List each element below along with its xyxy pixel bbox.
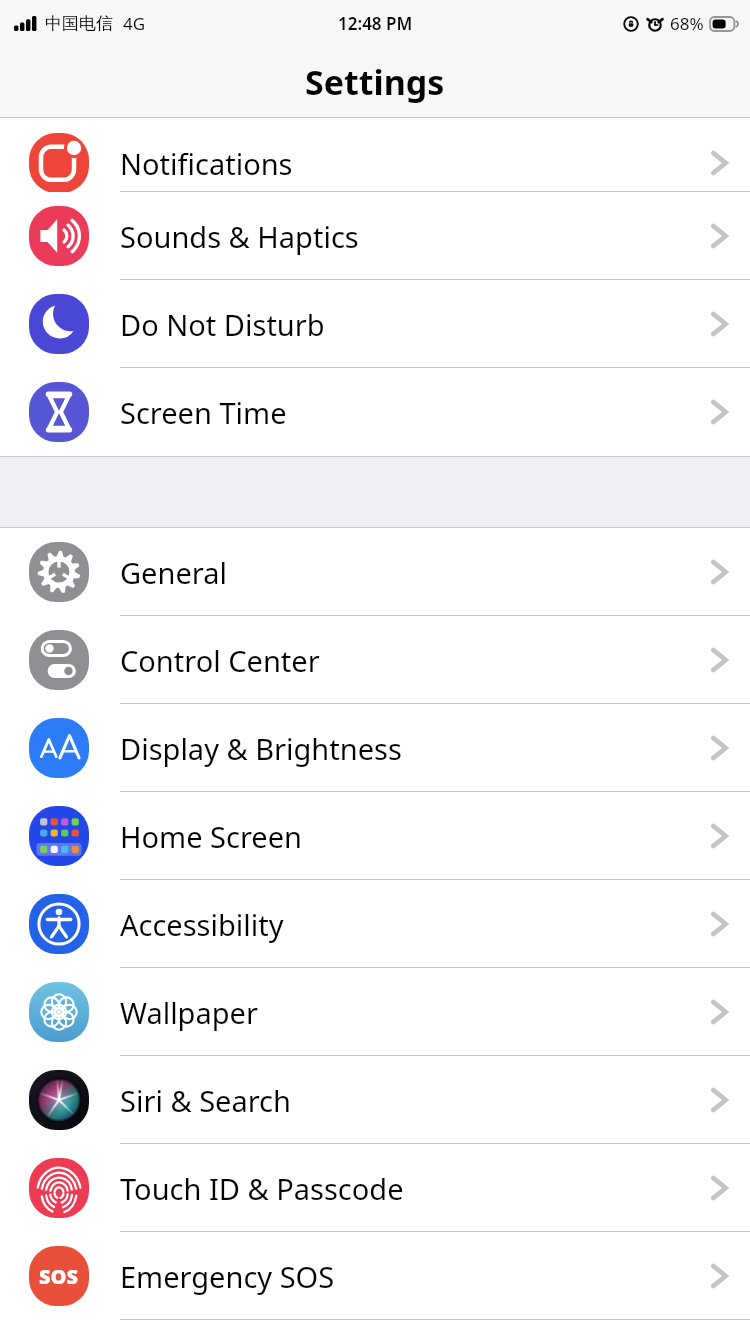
staticText: Emergency SOS (120, 1257, 335, 1296)
staticText: Home Screen (120, 817, 302, 856)
staticText: Control Center (120, 641, 320, 680)
staticText: Sounds & Haptics (120, 217, 359, 256)
button[interactable]: Wallpaper (0, 968, 750, 1056)
button[interactable]: Touch ID & Passcode (0, 1144, 750, 1232)
button[interactable]: SOS (0, 1232, 750, 1320)
button[interactable]: Sounds & Haptics (0, 192, 750, 280)
staticText: Touch ID & Passcode (120, 1169, 404, 1208)
button[interactable]: Do Not Disturb (0, 280, 750, 368)
staticText: Settings (305, 59, 445, 105)
staticText: General (120, 553, 227, 592)
button[interactable]: Notifications (0, 118, 750, 192)
button[interactable]: General (0, 528, 750, 616)
button[interactable]: Siri & Search (0, 1056, 750, 1144)
staticText: Display & Brightness (120, 729, 402, 768)
button[interactable]: Accessibility (0, 880, 750, 968)
staticText: 4G (123, 12, 146, 35)
staticText: Accessibility (120, 905, 284, 944)
staticText: Screen Time (120, 393, 287, 432)
button[interactable]: Control Center (0, 616, 750, 704)
button[interactable]: Screen Time (0, 368, 750, 456)
button[interactable]: Home Screen (0, 792, 750, 880)
staticText: 中国电信 (45, 13, 113, 34)
staticText: Notifications (120, 144, 293, 183)
button[interactable]: Display & Brightness (0, 704, 750, 792)
staticText: Siri & Search (120, 1081, 291, 1120)
staticText: Do Not Disturb (120, 305, 325, 344)
staticText: SOS (39, 1263, 79, 1290)
staticText: Wallpaper (120, 993, 258, 1032)
staticText: 12:48 PM (338, 12, 413, 35)
staticText: 68% (670, 12, 704, 35)
